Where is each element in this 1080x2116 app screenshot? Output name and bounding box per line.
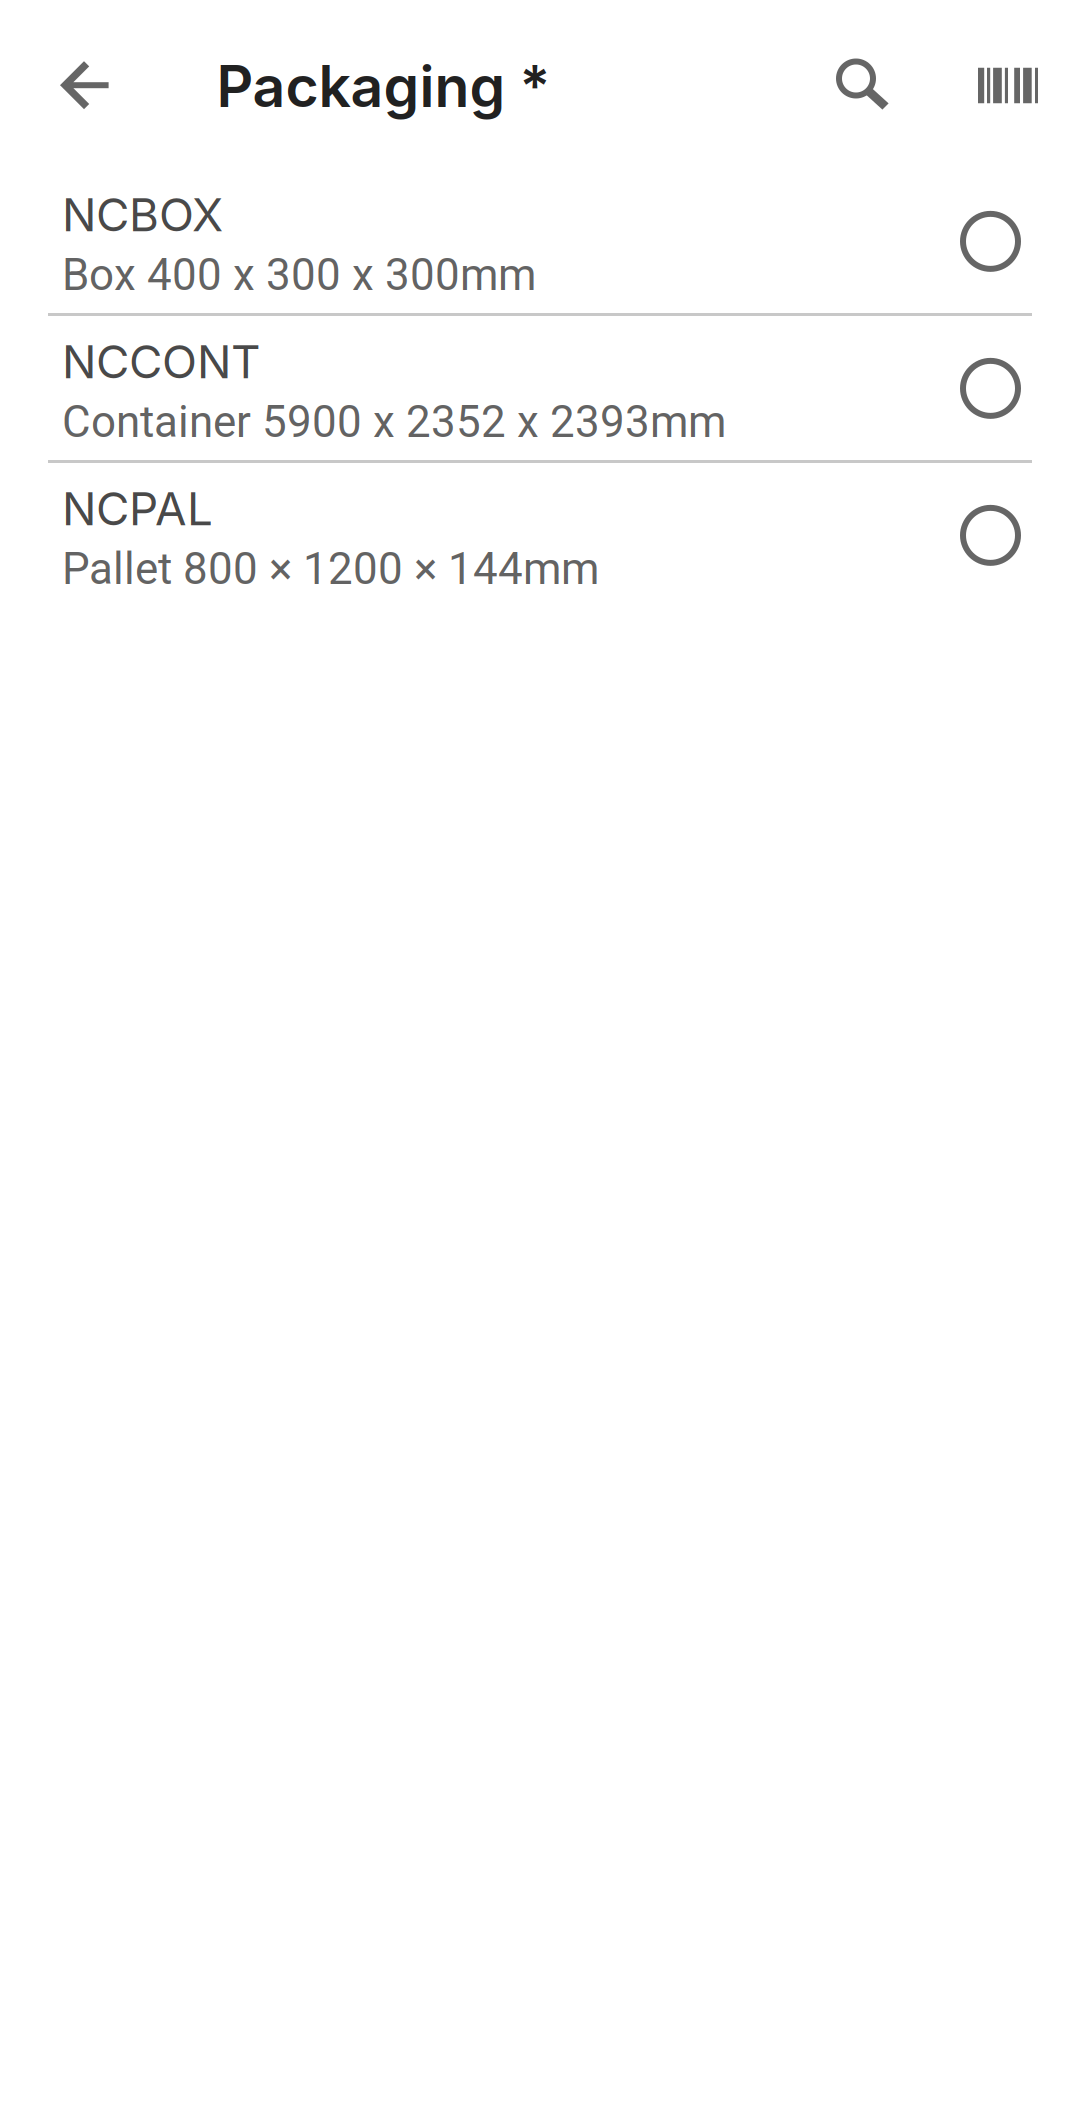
staticText: Box 400 x 300 x 300mm (62, 249, 536, 301)
staticText: NCCONT (62, 334, 261, 389)
button[interactable]: NCBOX (0, 169, 1080, 316)
staticText: Packaging * (217, 52, 551, 121)
button[interactable]: NCCONT (0, 316, 1080, 463)
button[interactable]: Search (829, 23, 919, 146)
staticText: Pallet 800 × 1200 × 144mm (62, 543, 599, 595)
button[interactable]: Back (0, 21, 145, 148)
staticText: NCPAL (62, 481, 213, 536)
staticText: Container 5900 x 2352 x 2393mm (62, 396, 726, 448)
staticText: NCBOX (62, 187, 223, 242)
button[interactable]: NCPAL (0, 463, 1080, 610)
button[interactable]: Scan barcode (919, 21, 1080, 148)
